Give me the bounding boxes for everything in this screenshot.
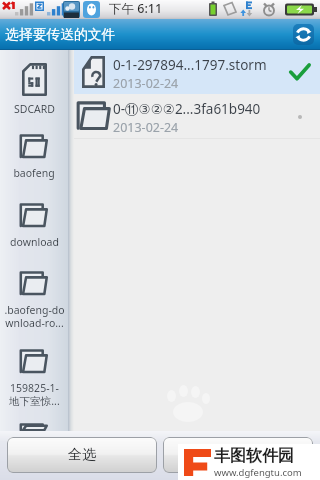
staticText: 发送 bbox=[224, 446, 252, 464]
staticText: 159825-1- 地下室惊... bbox=[9, 381, 60, 408]
staticText: 选择要传送的文件 bbox=[5, 26, 116, 43]
button[interactable]: 0-1-297894...1797.storm bbox=[74, 50, 320, 94]
staticText: download bbox=[10, 235, 59, 249]
staticText: 0-1-297894...1797.storm bbox=[113, 56, 267, 74]
staticText: 丰图软件园 bbox=[214, 446, 294, 466]
button[interactable]: Refresh bbox=[293, 24, 314, 45]
button[interactable]: SDCARD bbox=[0, 63, 68, 134]
button[interactable]: download bbox=[0, 203, 68, 271]
button[interactable]: 0-⑪③②②2...3fa61b940 bbox=[74, 94, 320, 138]
staticText: 全选 bbox=[68, 446, 96, 464]
staticText: SDCARD bbox=[14, 102, 55, 116]
staticText: .baofeng-do wnload-ro... bbox=[4, 303, 65, 330]
button[interactable]: 发送 bbox=[163, 437, 313, 473]
staticText: 0-⑪③②②2...3fa61b940 bbox=[113, 100, 261, 118]
staticText: www.dgfengtu.com bbox=[214, 466, 302, 479]
staticText: 2013-02-24 bbox=[113, 119, 179, 136]
button[interactable]: baofeng bbox=[0, 134, 68, 203]
button[interactable]: .baofeng-do wnload-ro... bbox=[0, 271, 68, 349]
staticText: baofeng bbox=[13, 166, 55, 180]
staticText: 2013-02-24 bbox=[113, 75, 179, 92]
button[interactable] bbox=[0, 424, 68, 431]
button[interactable]: 159825-1- 地下室惊... bbox=[0, 349, 68, 424]
staticText: 下午 6:11 bbox=[109, 0, 163, 17]
button[interactable]: 全选 bbox=[7, 437, 157, 473]
